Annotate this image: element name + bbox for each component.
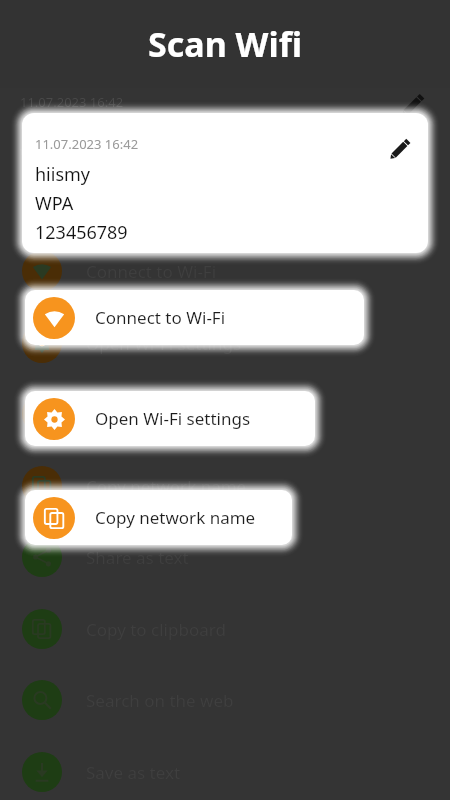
staticText: Copy network name [95, 506, 256, 529]
staticText: Copy network password [86, 403, 278, 426]
staticText: hiismy [35, 162, 91, 187]
button[interactable]: Copy network name [25, 490, 292, 545]
staticText: 11.07.2023 16:42 [35, 135, 139, 153]
staticText: WPA [20, 143, 59, 168]
staticText: hiismy [20, 110, 76, 135]
staticText: 123456789 [35, 220, 128, 245]
staticText: Connect to Wi-Fi [86, 260, 217, 283]
button[interactable]: Open Wi-Fi settings [25, 391, 315, 446]
staticText: Open Wi-Fi settings [86, 332, 242, 355]
staticText: WPA [35, 191, 74, 216]
staticText: Share as text [86, 546, 189, 569]
button[interactable]: Edit [388, 135, 414, 161]
staticText: Copy network name [86, 475, 247, 498]
staticText: Scan Wifi [148, 21, 302, 67]
staticText: Open Wi-Fi settings [95, 407, 251, 430]
staticText: Connect to Wi-Fi [95, 306, 226, 329]
button[interactable]: Connect to Wi-Fi [25, 290, 364, 345]
staticText: 11.07.2023 16:42 [20, 93, 124, 111]
staticText: 123456789 [20, 176, 113, 201]
